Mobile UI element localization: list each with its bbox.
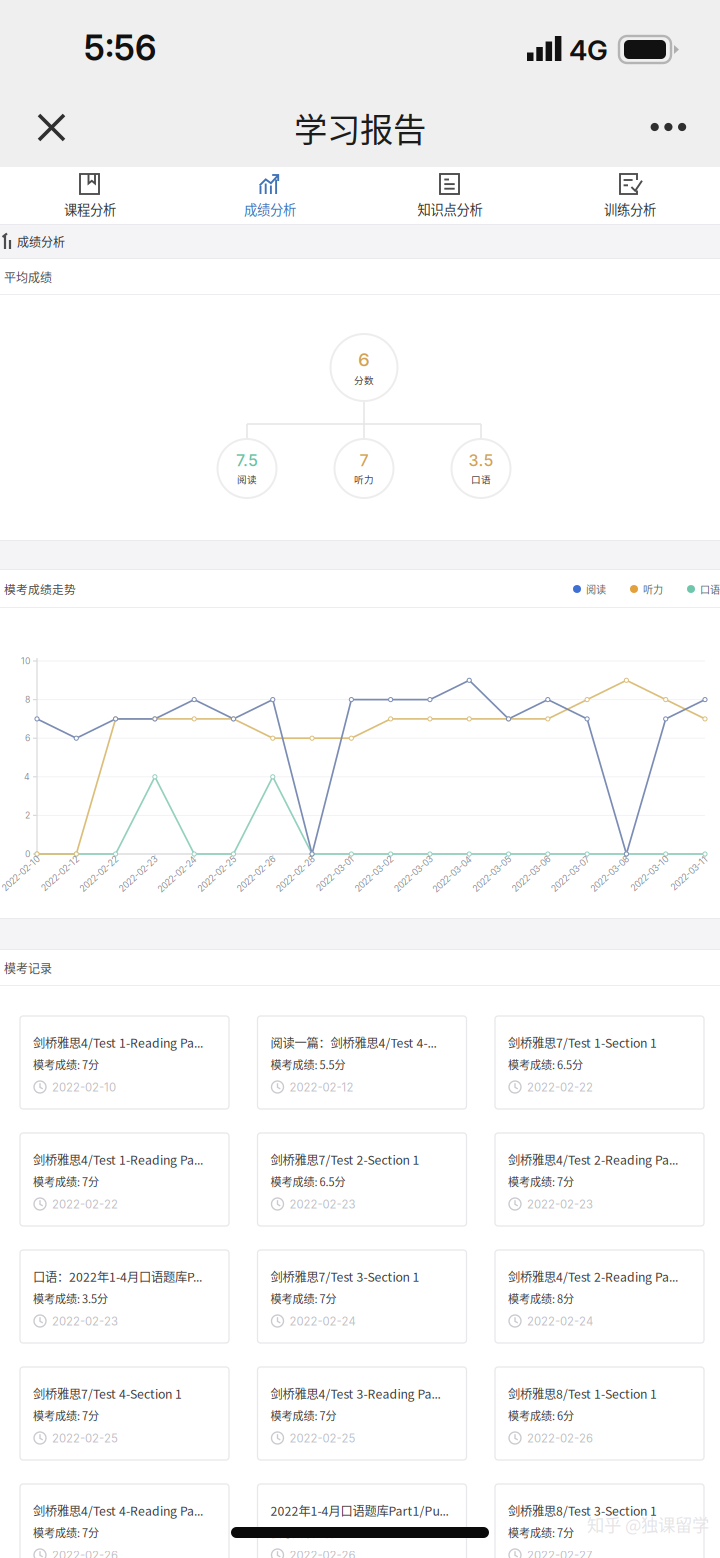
staticText: 2022-03-05 [469, 873, 517, 883]
staticText: 4G [569, 33, 608, 67]
staticText: 阅读 [237, 472, 257, 486]
staticText: 课程分析 [64, 199, 116, 219]
staticText: 2022-02-26 [289, 1549, 355, 1558]
staticText: 模考成绩: 7分 [33, 1056, 99, 1072]
button[interactable]: 剑桥雅思4/Test 4-Reading Pa... [20, 1484, 229, 1558]
staticText: 平均成绩 [4, 268, 52, 286]
staticText: 阅读 [586, 582, 606, 596]
staticText: 2022-02-24 [527, 1315, 593, 1328]
staticText: 7.5 [236, 451, 258, 470]
staticText: 2022-02-24 [289, 1315, 355, 1328]
staticText: 2022-03-01 [313, 873, 360, 883]
staticText: 3.5 [468, 451, 493, 470]
button[interactable]: 剑桥雅思7/Test 4-Section 1 [20, 1367, 229, 1460]
staticText: 模考成绩: 8分 [508, 1290, 574, 1306]
button[interactable]: 关闭 [15, 92, 89, 162]
staticText: 剑桥雅思4/Test 1-Reading Pa... [33, 1034, 203, 1051]
staticText: 2022-03-02 [352, 873, 400, 883]
button[interactable]: 剑桥雅思4/Test 2-Reading Pa... [495, 1133, 704, 1226]
staticText: 2022-02-28 [273, 873, 321, 883]
staticText: 8 [25, 694, 30, 705]
staticText: 分数 [354, 373, 374, 387]
staticText: 2022-02-27 [527, 1549, 592, 1558]
staticText: 口语 [471, 472, 491, 486]
staticText: 5:56 [84, 27, 156, 69]
staticText: 模考成绩走势 [4, 580, 76, 597]
button[interactable]: 剑桥雅思8/Test 1-Section 1 [495, 1367, 704, 1460]
staticText: 模考成绩: 7分 [33, 1524, 99, 1540]
button[interactable]: 剑桥雅思4/Test 2-Reading Pa... [495, 1250, 704, 1343]
staticText: 2022-02-25 [194, 873, 242, 883]
staticText: 2022-02-22 [527, 1081, 593, 1094]
button[interactable]: 剑桥雅思8/Test 3-Section 1 [495, 1484, 704, 1558]
staticText: 7 [359, 451, 368, 470]
staticText: 模考成绩: 6.5分 [508, 1056, 583, 1072]
staticText: 听力 [354, 472, 374, 486]
staticText: 剑桥雅思8/Test 3-Section 1 [508, 1502, 657, 1519]
staticText: 2022-02-23 [527, 1198, 593, 1211]
staticText: 剑桥雅思8/Test 1-Section 1 [508, 1385, 657, 1402]
staticText: 剑桥雅思4/Test 2-Reading Pa... [508, 1151, 678, 1168]
staticText: 2022-02-10 [52, 1081, 116, 1094]
staticText: 2022-02-26 [234, 873, 282, 883]
staticText: 模考成绩: 6分 [508, 1407, 574, 1423]
staticText: 2022-02-22 [77, 873, 125, 883]
staticText: 0 [25, 849, 30, 859]
staticText: 2022-03-06 [509, 873, 557, 883]
staticText: 模考成绩: 7分 [508, 1173, 574, 1189]
staticText: 2022-02-22 [52, 1198, 118, 1211]
staticText: 模考成绩: 5.5分 [270, 1056, 345, 1072]
staticText: 2022-03-07 [548, 873, 596, 883]
button[interactable]: 知识点分析 [360, 167, 540, 224]
button[interactable]: 训练分析 [540, 167, 720, 224]
staticText: 剑桥雅思7/Test 1-Section 1 [508, 1034, 657, 1051]
button[interactable]: 剑桥雅思4/Test 3-Reading Pa... [257, 1367, 466, 1460]
staticText: 2022-02-23 [52, 1315, 118, 1328]
button[interactable]: 口语：2022年1-4月口语题库P... [20, 1250, 229, 1343]
staticText: 口语：2022年1-4月口语题库P... [33, 1268, 202, 1285]
staticText: 口语 [700, 582, 720, 596]
staticText: 模考成绩: 7分 [33, 1173, 99, 1189]
staticText: 2022-03-11 [668, 873, 714, 883]
staticText: 2022-02-12 [38, 873, 85, 883]
staticText: 剑桥雅思7/Test 4-Section 1 [33, 1385, 182, 1402]
staticText: 训练分析 [604, 199, 656, 219]
staticText: 成绩分析 [244, 199, 296, 219]
staticText: 剑桥雅思7/Test 3-Section 1 [270, 1268, 419, 1285]
button[interactable]: 剑桥雅思7/Test 2-Section 1 [257, 1133, 466, 1226]
button[interactable]: 成绩分析 [180, 167, 360, 224]
staticText: 2022-03-10 [628, 873, 675, 883]
staticText: 2022-02-26 [52, 1549, 118, 1558]
staticText: 模考成绩: 3.5分 [33, 1290, 108, 1306]
staticText: 2022年1-4月口语题库Part1/Pu... [270, 1502, 448, 1519]
staticText: 模考成绩: 7分 [508, 1524, 574, 1540]
staticText: 剑桥雅思4/Test 2-Reading Pa... [508, 1268, 678, 1285]
button[interactable]: 剑桥雅思7/Test 3-Section 1 [257, 1250, 466, 1343]
button[interactable]: 课程分析 [0, 167, 180, 224]
staticText: 2022-02-12 [289, 1081, 353, 1094]
staticText: 模考记录 [4, 959, 52, 977]
staticText: 2022-02-24 [154, 873, 203, 883]
staticText: 6 [358, 348, 370, 371]
button[interactable]: 剑桥雅思4/Test 1-Reading Pa... [20, 1133, 229, 1226]
button[interactable]: 更多 [637, 92, 711, 162]
staticText: 2022-03-04 [429, 873, 478, 883]
staticText: 阅读一篇：剑桥雅思4/Test 4-... [270, 1034, 436, 1051]
staticText: 2022-03-08 [587, 873, 635, 883]
button[interactable]: 剑桥雅思7/Test 1-Section 1 [495, 1016, 704, 1109]
staticText: 剑桥雅思7/Test 2-Section 1 [270, 1151, 419, 1168]
staticText: 6 [25, 733, 30, 743]
staticText: 模考成绩: 7分 [270, 1407, 336, 1423]
staticText: 2022-02-25 [52, 1432, 118, 1445]
staticText: 听力 [643, 582, 663, 596]
staticText: 2022-02-23 [289, 1198, 355, 1211]
button[interactable]: 2022年1-4月口语题库Part1/Pu... [257, 1484, 466, 1558]
staticText: 10 [21, 656, 30, 666]
button[interactable]: 剑桥雅思4/Test 1-Reading Pa... [20, 1016, 229, 1109]
staticText: 模考成绩: 7分 [33, 1407, 99, 1423]
staticText: 2022-02-23 [116, 873, 164, 883]
staticText: 成绩分析 [17, 233, 65, 250]
button[interactable]: 阅读一篇：剑桥雅思4/Test 4-... [257, 1016, 466, 1109]
staticText: 4 [24, 772, 30, 782]
staticText: 2022-02-26 [527, 1432, 593, 1445]
